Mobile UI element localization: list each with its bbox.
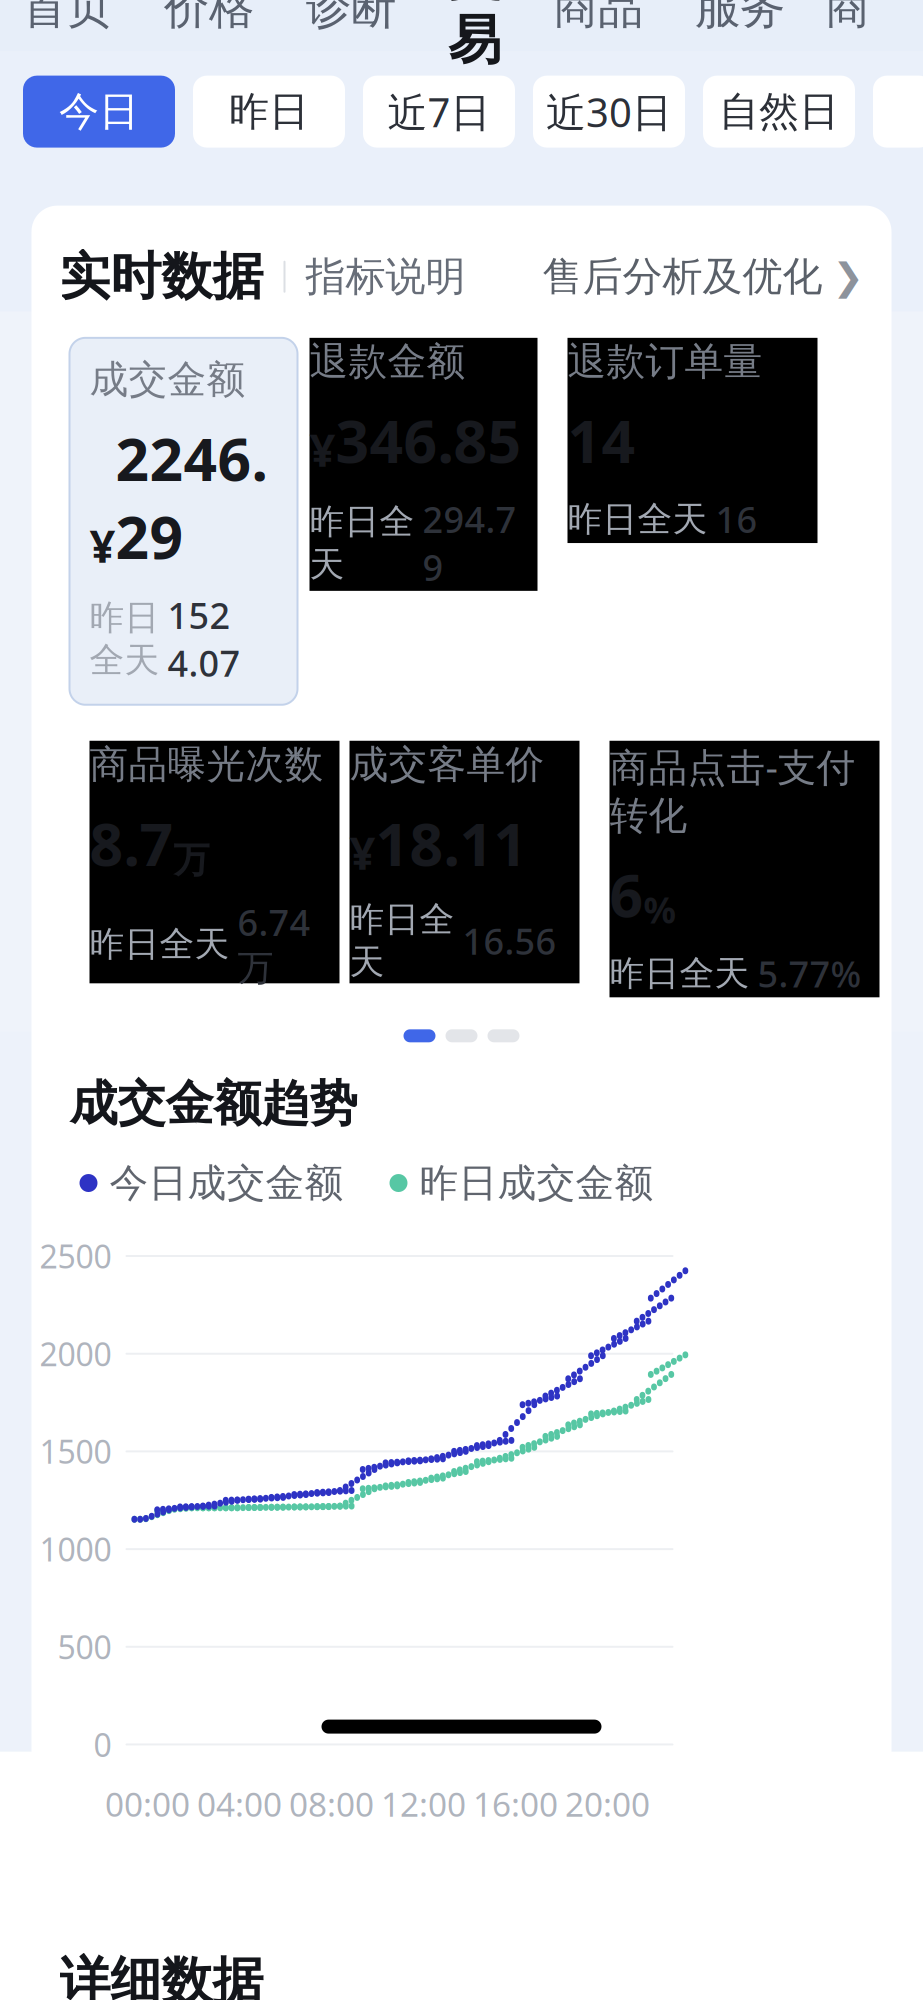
- button[interactable]: 交易: [422, 0, 527, 46]
- staticText: 诊断: [306, 0, 396, 35]
- staticText: 18.11: [375, 804, 527, 882]
- staticText: 2246.29: [115, 419, 267, 575]
- staticText: 16:00: [473, 1782, 558, 1826]
- staticText: 成交金额: [89, 356, 245, 403]
- staticText: 0: [93, 1723, 111, 1766]
- staticText: 商品: [553, 0, 643, 35]
- staticText: 6.74万: [237, 898, 310, 990]
- button[interactable]: 自然日: [703, 76, 855, 148]
- staticText: 16.56: [462, 917, 556, 965]
- staticText: 商品曝光次数: [89, 741, 323, 788]
- staticText: 昨日全天: [609, 952, 749, 995]
- button[interactable]: 商: [811, 0, 884, 46]
- staticText: 1500: [39, 1430, 111, 1473]
- staticText: 08:00: [289, 1782, 374, 1826]
- staticText: 自然日: [719, 87, 839, 136]
- staticText: 近30日: [546, 85, 672, 138]
- staticText: 今日: [59, 87, 139, 136]
- staticText: ❯: [832, 255, 863, 298]
- staticText: 昨日全天: [89, 923, 229, 965]
- button[interactable]: 诊断: [280, 0, 422, 46]
- staticText: 售后分析及优化: [542, 252, 822, 301]
- staticText: 昨日: [229, 87, 309, 136]
- button[interactable]: 近30日: [533, 76, 685, 148]
- button[interactable]: 指标说明: [305, 252, 465, 301]
- button[interactable]: 售后分析及优化: [542, 252, 863, 301]
- staticText: %: [643, 886, 675, 933]
- staticText: 20:00: [565, 1782, 650, 1826]
- staticText: 实时数据: [59, 246, 263, 308]
- staticText: 指标说明: [305, 252, 465, 301]
- staticText: 首页: [22, 0, 112, 35]
- staticText: 294.79: [422, 495, 516, 591]
- staticText: 6: [609, 856, 643, 933]
- staticText: 00:00: [105, 1782, 190, 1826]
- staticText: 8.7: [89, 804, 173, 882]
- button[interactable]: 价格: [138, 0, 280, 46]
- staticText: 详细数据: [59, 1950, 263, 2000]
- staticText: 04:00: [197, 1782, 282, 1826]
- staticText: 万: [173, 838, 209, 882]
- staticText: 昨日全天: [309, 500, 414, 586]
- staticText: ¥: [349, 822, 375, 882]
- staticText: 昨日全天: [349, 898, 454, 983]
- staticText: 昨日全天: [89, 596, 159, 682]
- staticText: 退款订单量: [567, 338, 762, 385]
- staticText: ¥: [309, 419, 335, 479]
- staticText: 商: [825, 0, 870, 35]
- button[interactable]: 服务: [669, 0, 811, 46]
- staticText: 昨日成交金额: [419, 1159, 653, 1207]
- staticText: 1000: [39, 1528, 111, 1570]
- button[interactable]: 商品: [527, 0, 669, 46]
- staticText: 商品点击-支付转化: [609, 741, 855, 840]
- staticText: 成交金额趋势: [69, 1074, 357, 1133]
- staticText: 346.85: [335, 401, 521, 479]
- staticText: 价格: [164, 0, 254, 35]
- staticText: 退款金额: [309, 338, 465, 385]
- button[interactable]: 昨日: [193, 76, 345, 148]
- staticText: 昨日全天: [567, 498, 707, 540]
- staticText: 2500: [39, 1235, 111, 1277]
- button[interactable]: 今日: [23, 76, 175, 148]
- staticText: 500: [57, 1625, 111, 1668]
- button[interactable]: 首页: [0, 0, 138, 46]
- staticText: 16: [715, 495, 757, 543]
- staticText: 2000: [39, 1332, 111, 1375]
- staticText: 14: [567, 401, 635, 479]
- staticText: 5.77%: [757, 949, 861, 997]
- staticText: ¥: [89, 515, 115, 575]
- staticText: 1524.07: [167, 591, 240, 687]
- staticText: 交易: [448, 0, 501, 73]
- staticText: 近7日: [387, 85, 490, 138]
- staticText: 服务: [695, 0, 785, 35]
- staticText: 今日成交金额: [109, 1159, 343, 1207]
- button[interactable]: 近7日: [363, 76, 515, 148]
- staticText: 12:00: [381, 1782, 466, 1826]
- staticText: 成交客单价: [349, 741, 544, 788]
